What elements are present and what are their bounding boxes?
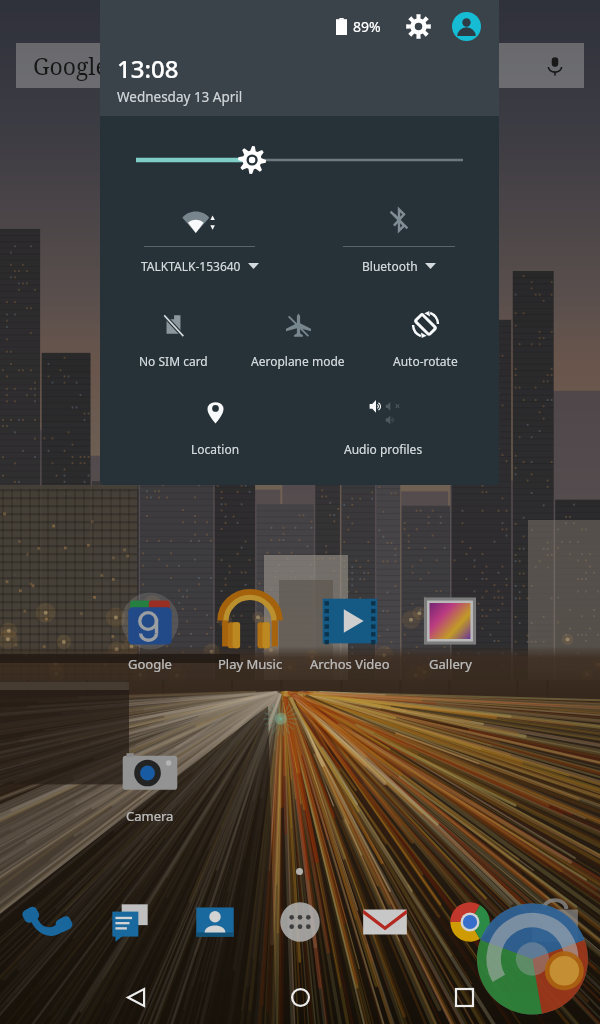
button[interactable]: Home	[272, 970, 328, 1024]
staticText: Auto-rotate	[393, 353, 458, 369]
staticText: 89%	[353, 17, 381, 36]
other: Voice search	[544, 55, 566, 77]
button[interactable]: Phone	[13, 888, 81, 956]
button[interactable]: Gmail	[351, 888, 419, 956]
button[interactable]: Recent apps	[436, 970, 492, 1024]
staticText: Archos Video	[310, 655, 390, 673]
staticText: Aeroplane mode	[251, 353, 345, 369]
button[interactable]: Play Store	[521, 888, 589, 956]
button[interactable]: Bluetooth	[299, 206, 499, 274]
button[interactable]: Location	[160, 394, 270, 457]
button[interactable]: No SIM card	[118, 306, 228, 369]
button[interactable]: Google	[100, 590, 200, 673]
button[interactable]: All apps	[266, 888, 334, 956]
button[interactable]: Google	[16, 43, 584, 88]
button[interactable]: Chrome	[436, 888, 504, 956]
staticText: Location	[191, 441, 240, 457]
staticText: Google	[33, 50, 108, 81]
button[interactable]: Back	[108, 970, 164, 1024]
button[interactable]: Settings	[402, 10, 434, 42]
staticText: 13:08	[117, 52, 179, 85]
staticText: Google	[128, 655, 172, 673]
button[interactable]: TALKTALK-153640	[100, 206, 299, 274]
button[interactable]: Camera	[100, 742, 200, 825]
staticText: Play Music	[218, 655, 283, 673]
staticText: No SIM card	[139, 353, 208, 369]
button[interactable]: Contacts	[181, 888, 249, 956]
button[interactable]: Messaging	[96, 888, 164, 956]
button[interactable]: Auto-rotate	[370, 306, 480, 369]
staticText: Audio profiles	[344, 441, 423, 457]
button[interactable]: Play Music	[200, 590, 300, 673]
button[interactable]: Aeroplane mode	[243, 306, 353, 369]
staticText: Wednesday 13 April	[117, 88, 243, 106]
staticText: Gallery	[429, 655, 472, 673]
button[interactable]: Gallery	[400, 590, 500, 673]
button[interactable]: User profile	[450, 10, 482, 42]
button[interactable]: Archos Video	[300, 590, 400, 673]
staticText: TALKTALK-153640	[141, 258, 241, 274]
staticText: Camera	[126, 807, 174, 825]
staticText: Bluetooth	[362, 258, 418, 274]
button[interactable]: Audio profiles	[328, 394, 438, 457]
